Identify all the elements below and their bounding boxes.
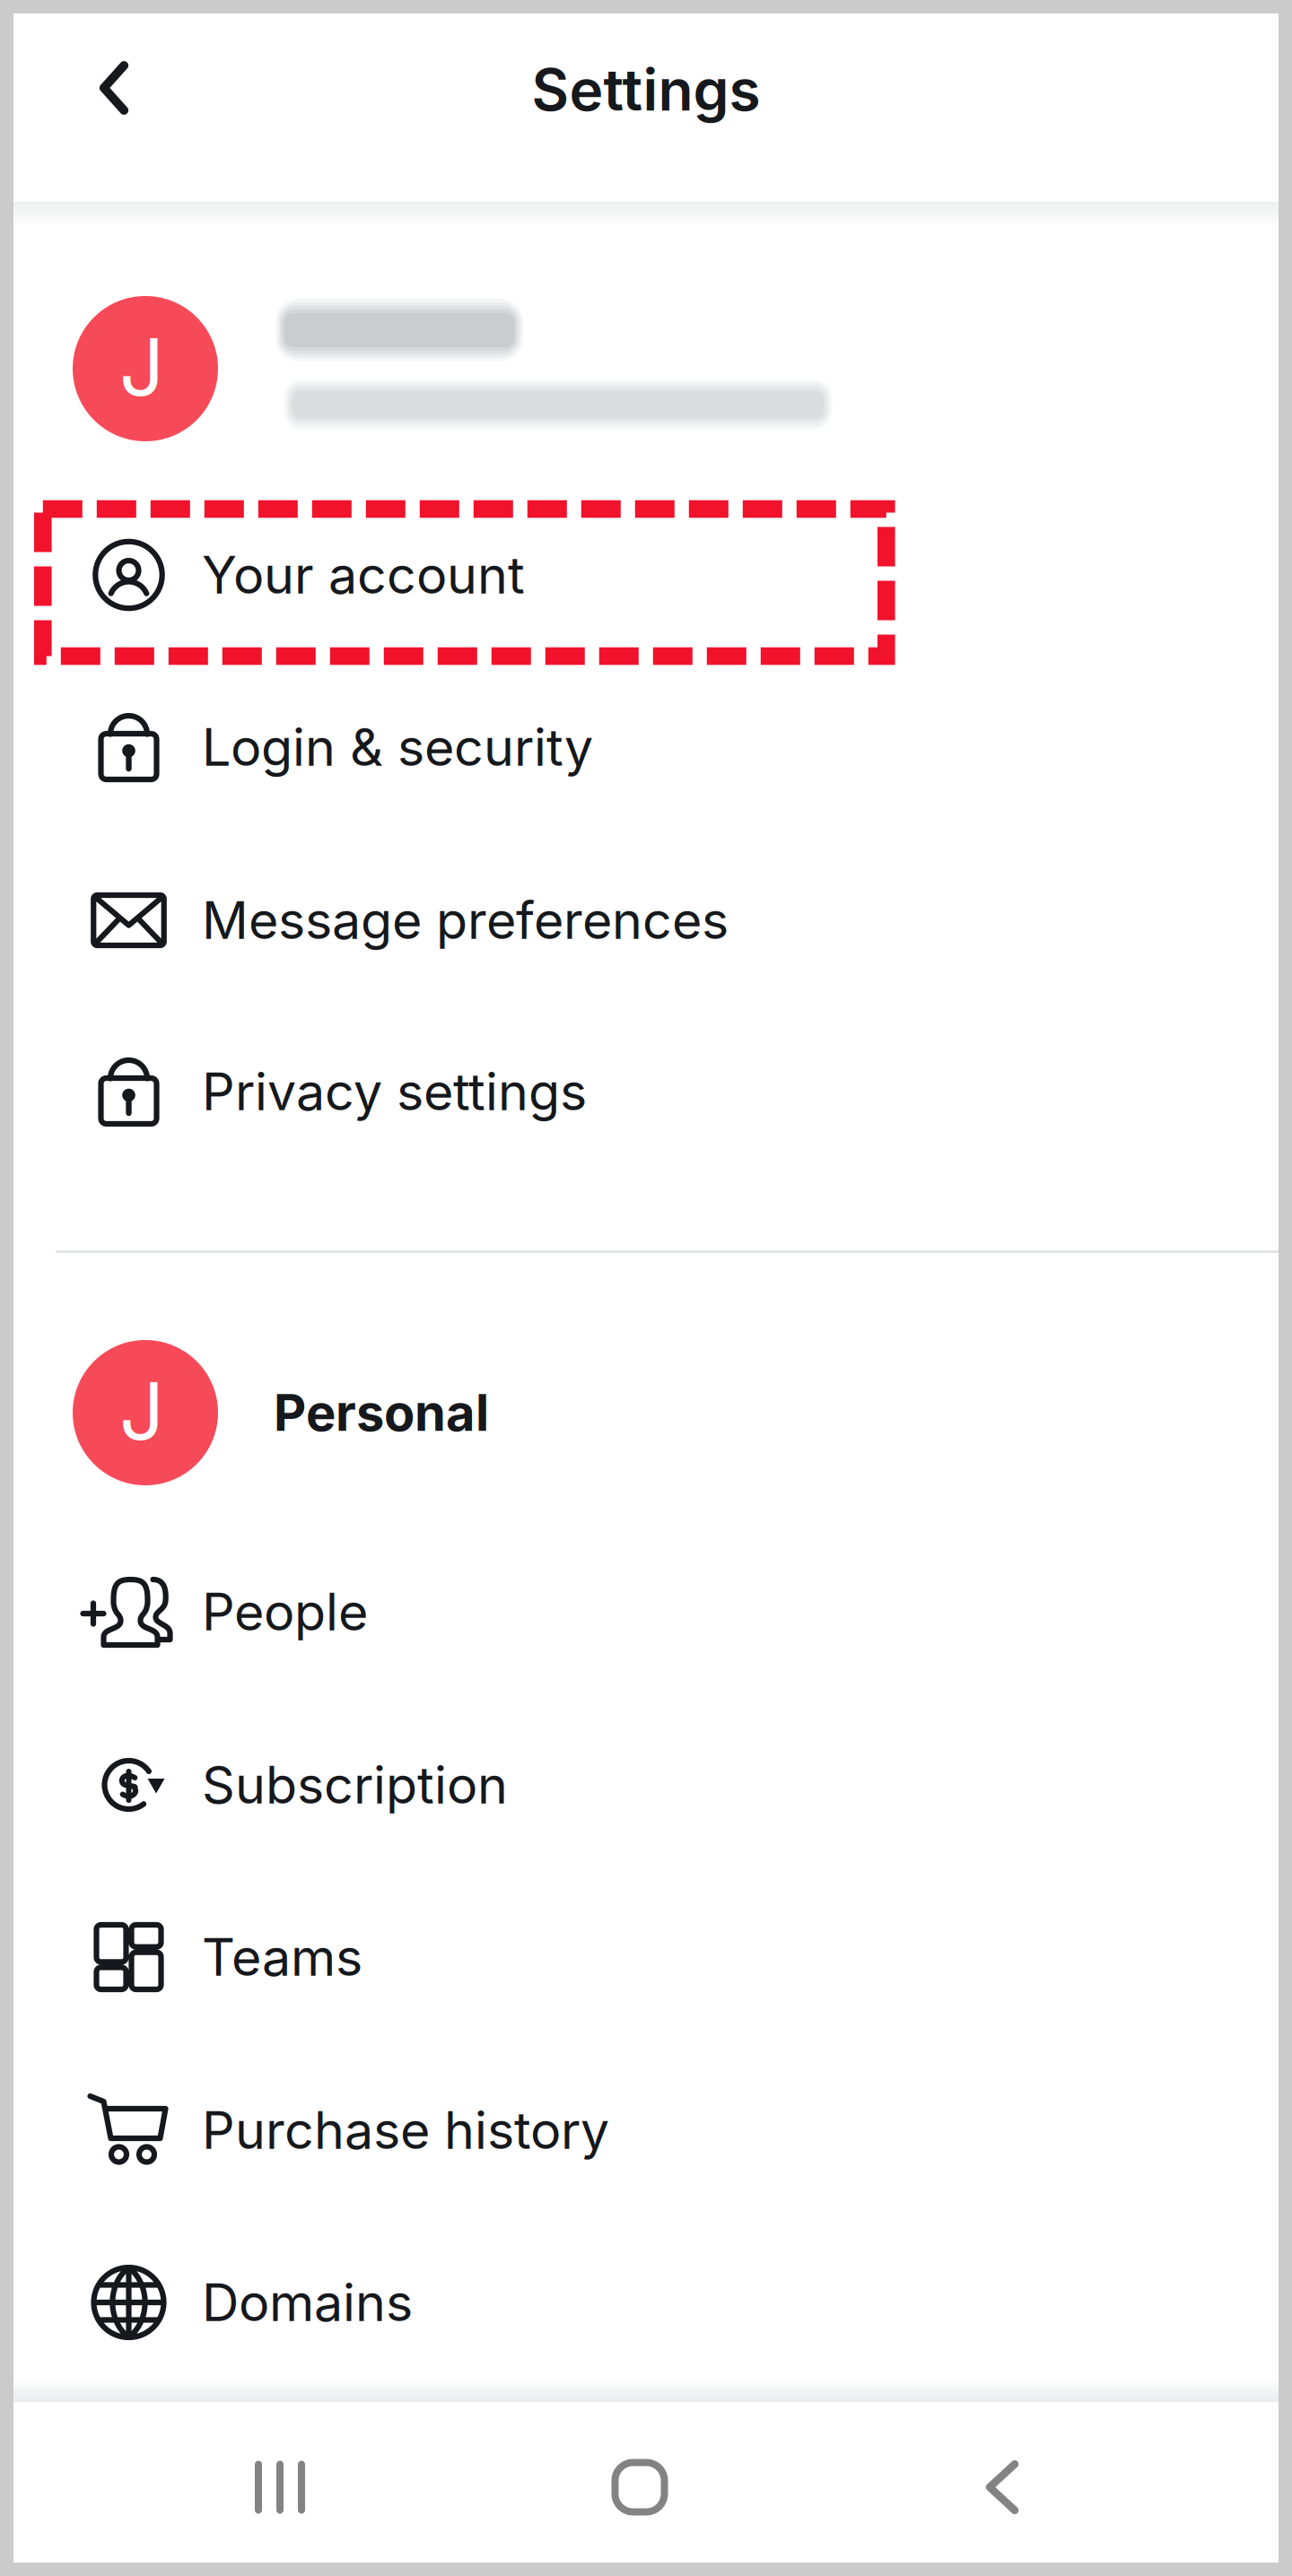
staticText: Message preferences [202, 889, 729, 951]
staticText: Personal [274, 1382, 489, 1443]
button[interactable]: Home [532, 2407, 747, 2567]
button[interactable]: Back [58, 32, 170, 144]
button[interactable]: Your account [13, 489, 1279, 661]
button[interactable]: Message preferences [13, 834, 1279, 1006]
staticText: Login & security [202, 716, 593, 778]
button[interactable]: Domains [13, 2216, 1279, 2389]
button[interactable]: Login & security [13, 661, 1279, 833]
staticText: Domains [202, 2271, 413, 2334]
button[interactable]: Subscription [13, 1699, 1279, 1871]
button[interactable]: Teams [13, 1871, 1279, 2043]
staticText: J [119, 1363, 164, 1459]
staticText: Teams [202, 1926, 362, 1988]
button[interactable]: Recent apps [172, 2407, 388, 2567]
staticText: Subscription [202, 1754, 508, 1816]
staticText: J [119, 319, 164, 415]
staticText: People [202, 1581, 368, 1643]
staticText: Privacy settings [202, 1060, 587, 1123]
staticText: Your account [202, 544, 525, 606]
button[interactable]: Purchase history [13, 2044, 1279, 2216]
button[interactable]: People [13, 1526, 1279, 1698]
staticText: Purchase history [202, 2099, 609, 2161]
button[interactable]: Privacy settings [13, 1005, 1279, 1178]
staticText: Settings [532, 55, 760, 124]
button[interactable]: Back [895, 2407, 1110, 2567]
